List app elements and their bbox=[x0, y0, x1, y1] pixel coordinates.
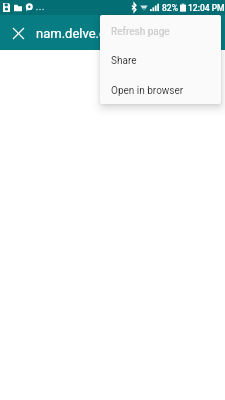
button[interactable]: Close bbox=[6, 20, 31, 45]
staticText: nam.delve.com bbox=[36, 26, 125, 41]
staticText: Refresh page bbox=[111, 26, 170, 38]
button[interactable]: Open in browser bbox=[100, 76, 221, 104]
staticText: Open in browser bbox=[111, 85, 184, 97]
staticText: Share bbox=[111, 55, 137, 67]
staticText: 12:04 PM bbox=[188, 3, 225, 13]
button[interactable]: Refresh page bbox=[100, 17, 221, 46]
button[interactable]: Share bbox=[100, 46, 221, 75]
staticText: 82% bbox=[162, 3, 178, 13]
